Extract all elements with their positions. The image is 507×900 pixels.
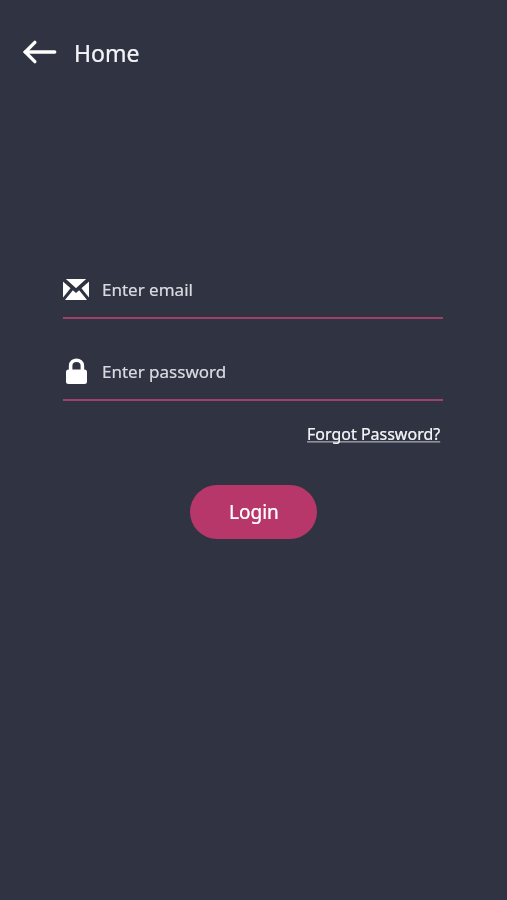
- button[interactable]: Enter email: [63, 272, 443, 319]
- button[interactable]: Back: [18, 30, 62, 74]
- staticText: Login: [229, 499, 279, 525]
- button[interactable]: Forgot Password?: [305, 419, 443, 449]
- button[interactable]: Login: [190, 485, 317, 539]
- staticText: Forgot Password?: [307, 423, 441, 445]
- button[interactable]: Enter password: [63, 354, 443, 401]
- staticText: Enter email: [102, 278, 193, 301]
- staticText: Home: [74, 37, 140, 68]
- staticText: Enter password: [102, 360, 227, 383]
